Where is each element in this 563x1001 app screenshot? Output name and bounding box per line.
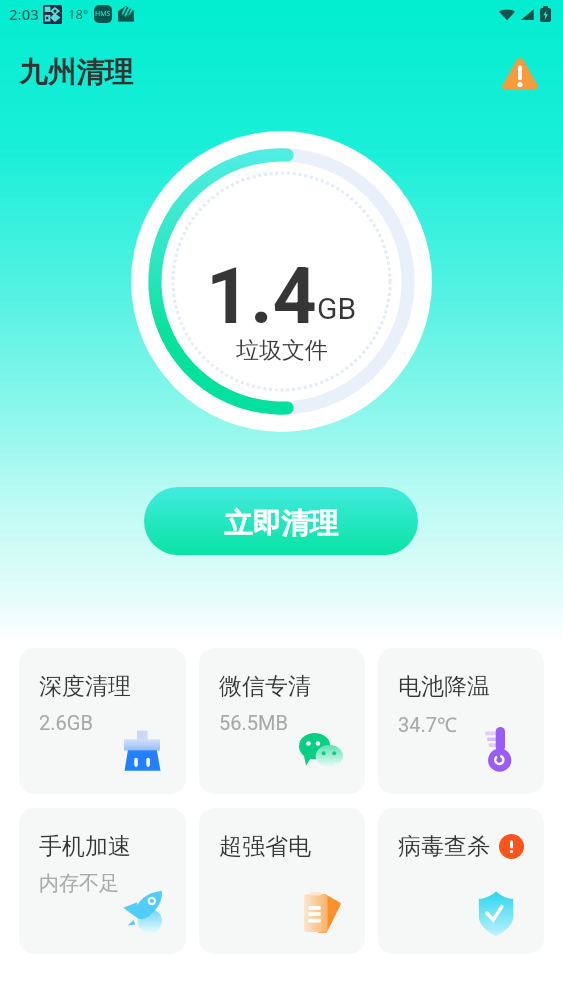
button[interactable]: 超强省电 (199, 808, 365, 954)
staticText: 1.4 (206, 252, 317, 342)
button[interactable]: Warning (497, 52, 542, 94)
staticText: 深度清理 (39, 672, 131, 701)
staticText: 立即清理 (224, 506, 338, 542)
staticText: GB (317, 291, 357, 326)
staticText: 34.7℃ (398, 711, 457, 738)
staticText: 手机加速 (39, 832, 131, 861)
staticText: 内存不足 (39, 871, 119, 896)
staticText: HMS (95, 9, 111, 19)
staticText: 电池降温 (398, 672, 490, 701)
staticText: 2.6GB (39, 711, 93, 734)
staticText: 56.5MB (219, 711, 288, 734)
button[interactable]: 电池降温 (378, 648, 544, 794)
staticText: 病毒查杀 (398, 832, 490, 861)
button[interactable]: 深度清理 (19, 648, 186, 794)
button[interactable]: 病毒查杀 (378, 808, 544, 954)
staticText: 超强省电 (219, 832, 311, 861)
staticText: 垃圾文件 (236, 336, 328, 365)
staticText: 微信专清 (219, 672, 311, 701)
button[interactable]: 微信专清 (199, 648, 365, 794)
staticText: 2:03 (9, 4, 39, 24)
button[interactable]: 手机加速 (19, 808, 186, 954)
staticText: 九州清理 (19, 55, 133, 91)
staticText: 18° (68, 5, 89, 23)
button[interactable]: 立即清理 (144, 487, 418, 555)
